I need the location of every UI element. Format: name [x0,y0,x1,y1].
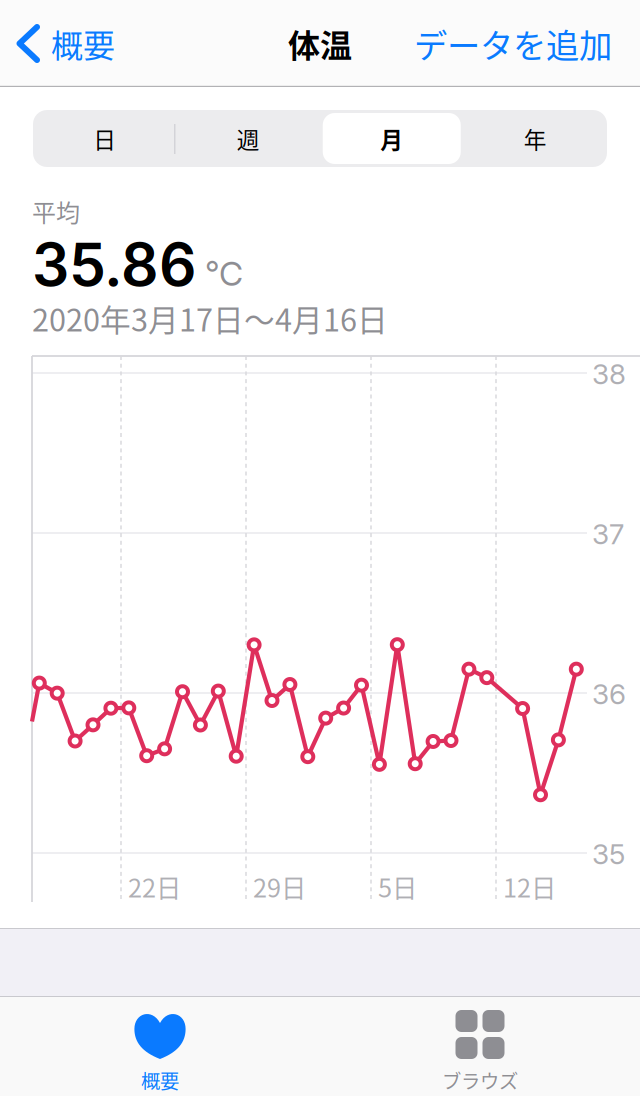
staticText: 29日 [253,868,306,905]
staticText: 平均 [32,194,80,229]
button[interactable]: 概要 [0,997,320,1096]
button[interactable]: 月 [320,110,463,167]
staticText: 週 [237,122,260,155]
staticText: 37 [592,517,624,551]
staticText: 38 [592,357,626,391]
button[interactable]: データを追加 [414,0,640,86]
staticText: 2020年3月17日〜4月16日 [32,296,388,340]
staticText: 35.86 [32,229,197,300]
staticText: °C [205,253,243,294]
staticText: 概要 [51,20,115,67]
button[interactable]: 日 [33,110,176,167]
button[interactable]: 概要 [0,0,115,86]
button[interactable]: ブラウズ [320,997,640,1096]
staticText: 5日 [378,868,417,905]
staticText: 月 [380,122,403,155]
staticText: 年 [524,122,547,155]
staticText: 体温 [288,20,352,67]
staticText: 22日 [128,868,181,905]
staticText: 12日 [503,868,556,905]
staticText: データを追加 [414,19,612,68]
button[interactable]: 年 [463,110,607,167]
staticText: 日 [93,122,116,155]
staticText: 概要 [141,1066,179,1094]
staticText: ブラウズ [442,1066,518,1094]
button[interactable]: 週 [176,110,320,167]
staticText: 36 [592,677,626,711]
staticText: 35 [592,837,625,871]
